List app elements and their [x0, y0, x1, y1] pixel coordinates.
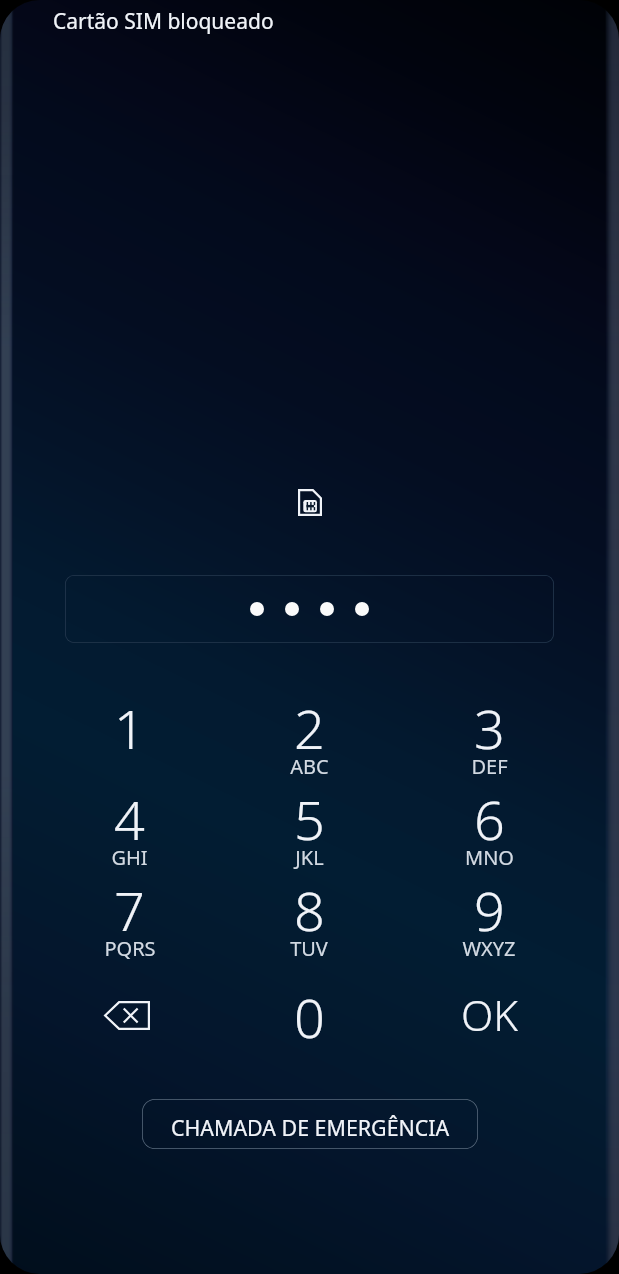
button[interactable]: 9	[399, 874, 579, 965]
staticText: 7	[114, 873, 145, 947]
button[interactable]: OK	[399, 965, 579, 1069]
button[interactable]: 0	[219, 965, 399, 1069]
staticText: TUV	[290, 935, 328, 962]
button[interactable]: 2	[219, 692, 399, 783]
button[interactable]: 8	[219, 874, 399, 965]
button[interactable]	[65, 575, 554, 643]
staticText: 3	[474, 691, 505, 765]
staticText: 0	[294, 980, 325, 1054]
button[interactable]: CHAMADA DE EMERGÊNCIA	[142, 1099, 478, 1149]
staticText: ABC	[290, 753, 329, 780]
button[interactable]: 3	[399, 692, 579, 783]
staticText: MNO	[465, 844, 514, 871]
staticText: 2	[294, 691, 325, 765]
staticText: 1	[114, 691, 145, 765]
staticText: Cartão SIM bloqueado	[53, 7, 274, 36]
button[interactable]: 7	[40, 874, 219, 965]
button[interactable]: 5	[219, 783, 399, 874]
staticText: GHI	[111, 844, 148, 871]
button[interactable]: Backspace	[40, 965, 219, 1069]
staticText: JKL	[295, 844, 324, 871]
staticText: DEF	[471, 753, 508, 780]
staticText: OK	[461, 986, 518, 1043]
staticText: 4	[114, 782, 145, 856]
staticText: 6	[474, 782, 505, 856]
staticText: 5	[294, 782, 325, 856]
staticText: CHAMADA DE EMERGÊNCIA	[171, 1113, 450, 1142]
staticText: 8	[294, 873, 325, 947]
staticText: 9	[474, 873, 505, 947]
staticText: PQRS	[104, 935, 156, 962]
button[interactable]: 1	[40, 692, 219, 783]
button[interactable]: 6	[399, 783, 579, 874]
staticText: WXYZ	[462, 935, 516, 962]
button[interactable]: 4	[40, 783, 219, 874]
